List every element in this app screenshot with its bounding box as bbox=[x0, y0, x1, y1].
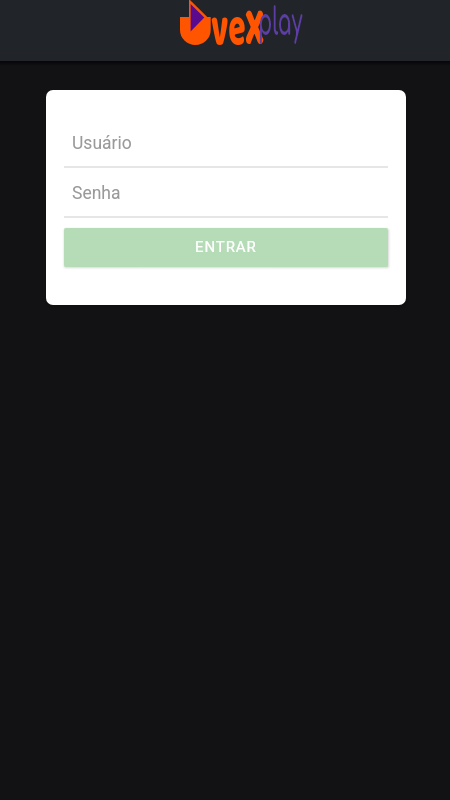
staticText: play bbox=[258, 2, 303, 44]
other: vexplay logo bbox=[178, 0, 214, 48]
button[interactable]: Senha bbox=[64, 180, 388, 218]
staticText: Usuário bbox=[72, 133, 132, 154]
button[interactable]: ENTRAR bbox=[64, 228, 388, 267]
staticText: ENTRAR bbox=[195, 238, 257, 256]
staticText: veX bbox=[211, 0, 264, 48]
button[interactable]: Usuário bbox=[64, 130, 388, 168]
staticText: Senha bbox=[72, 183, 121, 204]
